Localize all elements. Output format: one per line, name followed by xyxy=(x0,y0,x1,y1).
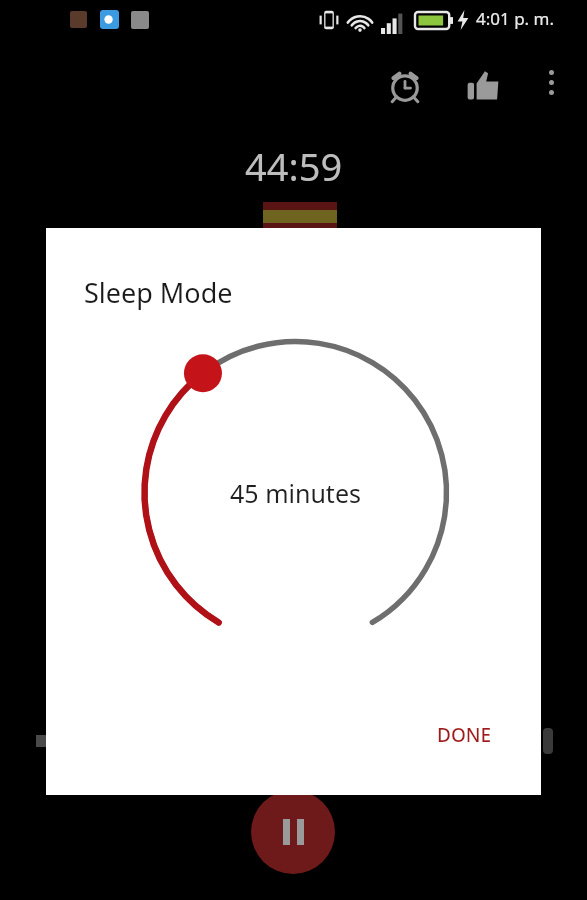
button[interactable]: Alarm xyxy=(377,58,433,114)
button[interactable]: Sleep timer duration xyxy=(144,341,447,644)
staticText: 4:01 p. m. xyxy=(476,7,555,30)
staticText: Sleep Mode xyxy=(84,274,233,311)
staticText: 44:59 xyxy=(245,140,343,192)
button[interactable]: DONE xyxy=(412,710,517,760)
staticText: 45 minutes xyxy=(230,476,361,510)
button[interactable]: Pause xyxy=(251,790,335,874)
staticText: DONE xyxy=(437,722,492,748)
button[interactable]: More options xyxy=(527,58,575,106)
button[interactable]: Like xyxy=(455,58,511,114)
